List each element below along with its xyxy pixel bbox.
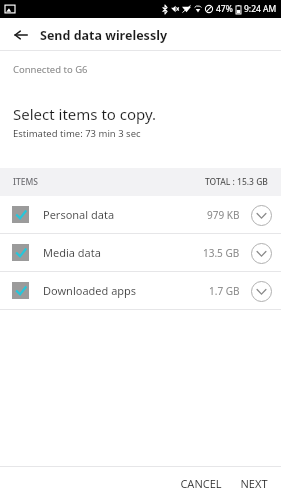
button[interactable]: Select Media data [0,234,281,271]
staticText: Estimated time: 73 min 3 sec [13,127,141,140]
button[interactable]: Select Personal data [0,196,281,233]
staticText: Select items to copy. [13,104,157,124]
staticText: ITEMS [13,176,38,188]
staticText: TOTAL : 15.3 GB [205,176,268,188]
staticText: 9:24 AM [244,3,277,15]
button[interactable]: Expand Media data [249,241,273,265]
button[interactable]: Expand Downloaded apps [249,279,273,303]
button[interactable]: CANCEL [172,470,230,497]
staticText: 47% [216,3,233,15]
staticText: NEXT [240,476,268,491]
button[interactable]: NEXT [232,470,276,497]
button[interactable]: Select Personal data [12,206,29,223]
staticText: CANCEL [180,476,222,491]
button[interactable]: Select Media data [12,244,29,261]
staticText: 979 KB [207,208,240,222]
staticText: 13.5 GB [203,246,240,260]
staticText: Send data wirelessly [40,27,168,44]
staticText: Media data [43,245,101,260]
staticText: Downloaded apps [43,283,137,298]
button[interactable]: Expand Personal data [249,203,273,227]
button[interactable]: Back [8,22,34,48]
staticText: Connected to G6 [13,63,88,76]
button[interactable]: Select Downloaded apps [0,272,281,309]
button[interactable]: Select Downloaded apps [12,282,29,299]
staticText: 1.7 GB [209,284,240,298]
staticText: Personal data [43,207,115,222]
